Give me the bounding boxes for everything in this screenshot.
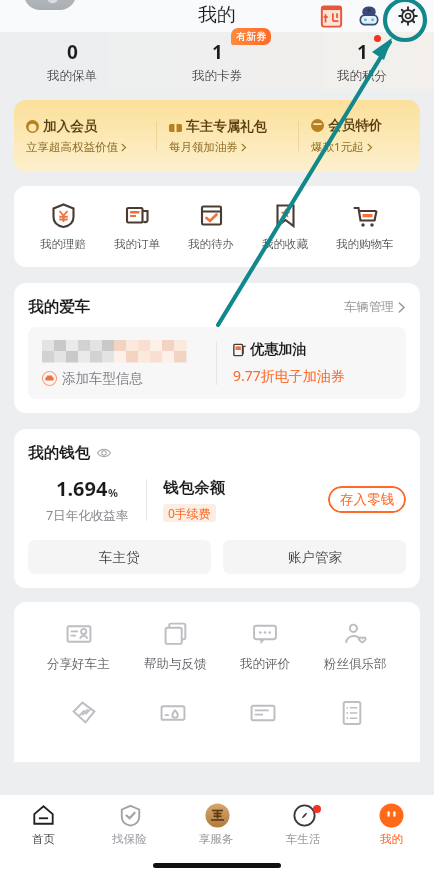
staticText: 0 [67, 39, 78, 65]
staticText: 每月领加油券 [169, 140, 238, 154]
staticText: 我的购物车 [336, 237, 394, 251]
staticText: 我的评价 [240, 656, 290, 672]
button[interactable]: 我的钱包 [28, 443, 111, 463]
button[interactable]: 车辆管理 [344, 299, 406, 315]
button[interactable]: 1 [289, 32, 434, 90]
staticText: 找保险 [112, 832, 147, 846]
staticText: 我的订单 [114, 237, 160, 251]
button[interactable]: Gifts [316, 1, 346, 31]
staticText: 帮助与反馈 [144, 656, 207, 672]
staticText: 1 [357, 39, 368, 65]
staticText: 9.77折电子加油券 [233, 366, 345, 385]
staticText: 享服务 [199, 832, 234, 846]
staticText: 加入会员 [43, 118, 97, 135]
staticText: 优惠加油 [250, 341, 306, 359]
button[interactable]: 分享好车主 [47, 620, 110, 672]
button[interactable]: Card [152, 692, 192, 732]
button[interactable]: 1 [144, 32, 289, 90]
staticText: % [108, 485, 118, 500]
button[interactable]: 优惠加油 [233, 341, 406, 385]
staticText: 存入零钱 [340, 491, 394, 508]
staticText: 车生活 [286, 832, 321, 846]
button[interactable]: 我的订单 [112, 202, 162, 251]
staticText: 我的收藏 [262, 237, 308, 251]
staticText: 我的积分 [337, 68, 387, 84]
button[interactable]: 添加车型信息 [42, 370, 143, 387]
staticText: 我的 [198, 3, 236, 27]
staticText: 我的待办 [188, 237, 234, 251]
button[interactable]: Profile avatar [24, 0, 76, 10]
staticText: 我的爱车 [28, 297, 90, 317]
button[interactable]: 账户管家 [223, 540, 406, 574]
staticText: 爆款1元起 [311, 139, 364, 155]
staticText: 1 [212, 39, 223, 65]
button[interactable]: 钱包余额 [163, 478, 225, 522]
button[interactable]: Document [242, 692, 282, 732]
staticText: 车主专属礼包 [186, 118, 267, 135]
button[interactable]: 找保险 [86, 795, 173, 853]
button[interactable]: List [331, 692, 371, 732]
button[interactable]: 车主贷 [28, 540, 211, 574]
staticText: 1.694 [56, 475, 108, 502]
staticText: 添加车型信息 [62, 370, 143, 387]
staticText: 分享好车主 [47, 656, 110, 672]
button[interactable]: 首页 [0, 795, 86, 853]
staticText: 会员特价 [328, 117, 382, 134]
button[interactable]: 存入零钱 [328, 486, 406, 513]
button[interactable]: 我的收藏 [260, 202, 310, 251]
button[interactable]: 0 [0, 32, 144, 90]
staticText: 我的理赔 [40, 237, 86, 251]
staticText: 车辆管理 [344, 299, 394, 315]
staticText: 我的 [380, 832, 403, 846]
button[interactable]: 粉丝俱乐部 [324, 620, 387, 672]
staticText: 我的保单 [47, 68, 97, 84]
button[interactable]: Assistant robot [354, 1, 384, 31]
button[interactable]: 加入会员 [14, 100, 420, 172]
button[interactable]: 我的评价 [240, 620, 290, 672]
staticText: 7日年化收益率 [46, 507, 129, 524]
staticText: 钱包余额 [163, 478, 225, 498]
button[interactable]: Handshake [63, 692, 103, 732]
button[interactable]: 帮助与反馈 [144, 620, 207, 672]
button[interactable]: 1.694 [28, 475, 146, 524]
button[interactable]: 享服务 [173, 795, 260, 853]
staticText: 我的钱包 [28, 443, 90, 463]
staticText: 车主贷 [99, 549, 140, 566]
staticText: 立享超高权益价值 [26, 140, 118, 154]
staticText: 我的卡券 [192, 68, 242, 84]
staticText: 账户管家 [288, 549, 342, 566]
button[interactable]: Settings [392, 0, 424, 32]
button[interactable]: 我的购物车 [334, 202, 396, 251]
staticText: 有新券 [236, 30, 266, 43]
button[interactable]: 我的待办 [186, 202, 236, 251]
button[interactable]: 我的 [347, 795, 434, 853]
button[interactable]: 我的理赔 [38, 202, 88, 251]
staticText: 首页 [32, 832, 55, 846]
staticText: 0手续费 [168, 505, 211, 521]
staticText: 粉丝俱乐部 [324, 656, 387, 672]
button[interactable]: 车生活 [260, 795, 347, 853]
